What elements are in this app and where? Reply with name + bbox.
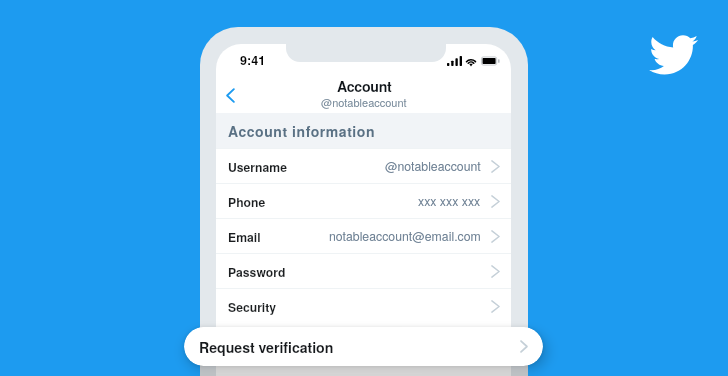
staticText: Email [228,228,261,245]
button[interactable]: Back [216,80,245,110]
button[interactable]: Phone [216,184,511,218]
staticText: 9:41 [240,51,266,69]
button[interactable]: Request verification [184,327,543,366]
staticText: Request verification [199,337,334,357]
button[interactable]: Password [216,254,511,288]
staticText: Password [228,263,286,280]
button[interactable]: Security [216,289,511,323]
staticText: Account [337,76,392,96]
button[interactable]: Email [216,219,511,253]
staticText: Security [228,298,277,315]
staticText: xxx xxx xxx [418,192,481,210]
staticText: @notableaccount [385,157,481,175]
staticText: Account information [228,121,375,141]
other: Twitter [649,35,698,75]
staticText: Username [228,158,287,175]
button[interactable]: Username [216,149,511,183]
staticText: notableaccount@email.com [329,227,481,245]
staticText: @notableaccount [321,94,407,110]
staticText: Phone [228,193,266,210]
